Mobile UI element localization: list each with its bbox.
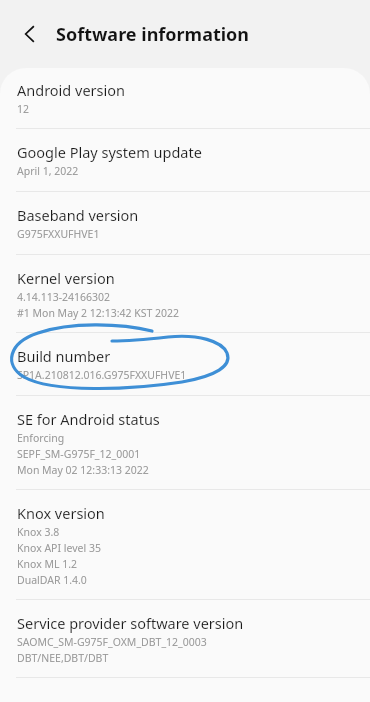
- staticText: DBT/NEE,DBT/DBT: [17, 651, 109, 665]
- staticText: SAOMC_SM-G975F_OXM_DBT_12_0003: [17, 635, 207, 649]
- staticText: Knox ML 1.2: [17, 557, 77, 571]
- staticText: April 1, 2022: [17, 164, 79, 178]
- staticText: Google Play system update: [17, 142, 202, 162]
- staticText: Knox API level 35: [17, 541, 101, 555]
- staticText: 4.14.113-24166302: [17, 290, 111, 304]
- staticText: Knox 3.8: [17, 525, 60, 539]
- staticText: Build number: [17, 346, 111, 366]
- button[interactable]: Android version: [0, 68, 370, 128]
- staticText: Enforcing: [17, 431, 65, 445]
- button[interactable]: Service provider software version: [0, 600, 370, 677]
- button[interactable]: Back: [8, 12, 52, 56]
- button[interactable]: Google Play system update: [0, 129, 370, 191]
- staticText: G975FXXUFHVE1: [17, 227, 100, 241]
- staticText: Kernel version: [17, 268, 115, 288]
- staticText: SP1A.210812.016.G975FXXUFHVE1: [17, 368, 187, 382]
- staticText: Software information: [56, 22, 250, 47]
- staticText: #1 Mon May 2 12:13:42 KST 2022: [17, 306, 180, 320]
- staticText: SEPF_SM-G975F_12_0001: [17, 447, 141, 461]
- staticText: Baseband version: [17, 205, 139, 225]
- button[interactable]: Build number: [0, 333, 370, 395]
- staticText: Mon May 02 12:33:13 2022: [17, 463, 149, 477]
- button[interactable]: Baseband version: [0, 192, 370, 254]
- staticText: 12: [17, 102, 30, 116]
- staticText: DualDAR 1.4.0: [17, 573, 87, 587]
- staticText: Service provider software version: [17, 613, 244, 633]
- button[interactable]: SE for Android status: [0, 396, 370, 489]
- staticText: Knox version: [17, 503, 105, 523]
- staticText: Android version: [17, 80, 125, 100]
- button[interactable]: Knox version: [0, 490, 370, 599]
- button[interactable]: Kernel version: [0, 255, 370, 332]
- staticText: SE for Android status: [17, 409, 160, 429]
